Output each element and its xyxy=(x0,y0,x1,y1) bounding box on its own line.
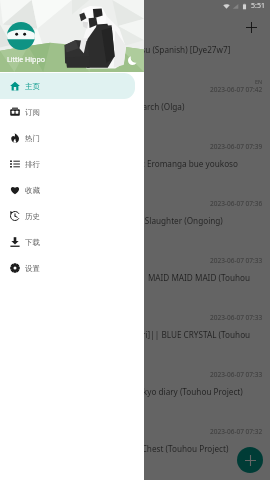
staticText: 2023-06-07 07:42 xyxy=(210,85,263,94)
staticText: 2023-06-07 07:32 xyxy=(210,427,263,436)
staticText: [Aoi Tsukasa] [Nanashiboji]| gensokyo di… xyxy=(9,386,270,397)
staticText: EN xyxy=(255,78,263,85)
staticText: [Yuzuki N Dash] Hajimete no Himitsu (Spa… xyxy=(9,44,270,55)
staticText: 收藏 xyxy=(25,186,40,195)
staticText: 设置 xyxy=(25,264,40,273)
button[interactable]: 历史 xyxy=(0,203,135,229)
button[interactable]: 订阅 xyxy=(0,99,135,125)
button[interactable]: Profile xyxy=(7,22,35,50)
button[interactable]: 设置 xyxy=(0,255,135,281)
staticText: 5:51 xyxy=(251,1,265,11)
staticText: [Tsukiyo Nashi] [Kushike-ta]| FLAT-Chest… xyxy=(9,443,270,454)
staticText: 排行 xyxy=(25,160,40,169)
button[interactable]: 排行 xyxy=(0,151,135,177)
button[interactable]: Toggle night mode xyxy=(124,52,141,69)
staticText: 2023-06-07 07:33 xyxy=(210,256,263,265)
staticText: [Shimofuri Meat Niku] [Kachihaha]| MAID … xyxy=(9,272,270,283)
button[interactable]: [Tsukiyo Nashi] [Kushike-ta]| FLAT-Chest… xyxy=(0,439,270,480)
button[interactable]: [Hiroya] EROMANGA-SENSEI-CHAN: Eromanga … xyxy=(0,154,270,211)
button[interactable]: [Toruneko] Gekkan Shoujo Kissu March (Ol… xyxy=(0,97,270,154)
button[interactable]: 主页 xyxy=(0,73,135,99)
staticText: 2023-06-07 07:33 xyxy=(210,370,263,379)
button[interactable]: [Aoi Tsukasa] [Nanashiboji]| gensokyo di… xyxy=(0,382,270,439)
staticText: 订阅 xyxy=(25,108,40,117)
staticText: [Kaitou Kurage Umi] [Hanakasumari]|| BLU… xyxy=(9,329,270,340)
button[interactable]: 热门 xyxy=(0,125,135,151)
staticText: 2023-06-07 07:36 xyxy=(210,199,263,208)
button[interactable]: [Yuzuki N Dash] Hajimete no Himitsu (Spa… xyxy=(0,40,270,97)
button[interactable]: [Akazawa Red Oni] Koakuma Sister Slaught… xyxy=(0,211,270,268)
staticText: 2023-06-07 07:33 xyxy=(210,313,263,322)
button[interactable]: [Kaitou Kurage Umi] [Hanakasumari]|| BLU… xyxy=(0,325,270,382)
button[interactable]: Add xyxy=(240,16,262,38)
staticText: [Toruneko] Gekkan Shoujo Kissu March (Ol… xyxy=(9,101,270,112)
staticText: Little Hippo xyxy=(7,55,45,65)
button[interactable]: Add new xyxy=(237,447,263,473)
button[interactable]: [Shimofuri Meat Niku] [Kachihaha]| MAID … xyxy=(0,268,270,325)
staticText: 历史 xyxy=(25,212,40,221)
staticText: 2023-06-07 07:39 xyxy=(210,142,263,151)
staticText: [Hiroya] EROMANGA-SENSEI-CHAN: Eromanga … xyxy=(9,158,270,169)
staticText: 热门 xyxy=(25,134,40,143)
button[interactable]: 下载 xyxy=(0,229,135,255)
staticText: 下载 xyxy=(25,238,40,247)
staticText: 主页 xyxy=(25,82,40,91)
staticText: [Akazawa Red Oni] Koakuma Sister Slaught… xyxy=(9,215,270,226)
button[interactable]: 收藏 xyxy=(0,177,135,203)
